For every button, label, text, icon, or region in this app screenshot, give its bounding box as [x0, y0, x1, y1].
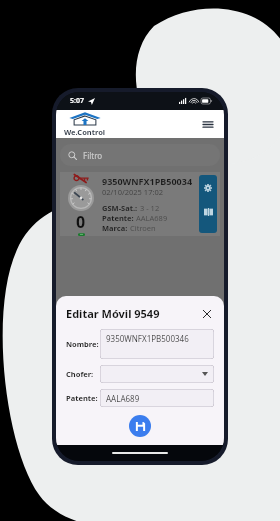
button[interactable]: 0	[60, 172, 220, 236]
button[interactable]: Settings	[201, 181, 215, 195]
staticText: Patente:	[102, 213, 134, 223]
staticText: Editar Móvil 9549	[66, 306, 200, 321]
staticText: 3 - 12	[140, 203, 160, 213]
staticText: AALA689	[106, 393, 140, 404]
staticText: Nombre:	[66, 339, 100, 349]
staticText: 9350WNFX1PB500346	[106, 333, 189, 344]
button[interactable]: 9350WNFX1PB500346	[100, 329, 214, 359]
staticText: GSM-Sat.:	[102, 203, 138, 213]
button[interactable]: Map	[201, 205, 215, 219]
staticText: 0	[76, 211, 86, 233]
staticText: Marca:	[102, 223, 128, 233]
button[interactable]: Menu	[200, 116, 216, 132]
staticText: 9350WNFX1PB500346	[102, 175, 196, 187]
button[interactable]: Filtro	[60, 144, 220, 166]
staticText: We.Control	[64, 127, 106, 137]
staticText: Patente:	[66, 393, 100, 403]
button[interactable]	[100, 365, 214, 383]
staticText: Chofer:	[66, 369, 100, 379]
staticText: 5:07	[70, 96, 84, 106]
staticText: Citroen	[130, 223, 156, 233]
button[interactable]: Save	[129, 415, 151, 437]
staticText: 02/10/2025 17:02	[102, 187, 164, 197]
button[interactable]: AALA689	[100, 389, 214, 407]
staticText: Filtro	[83, 150, 103, 161]
button[interactable]: Close	[200, 307, 214, 321]
staticText: AALA689	[136, 213, 168, 223]
